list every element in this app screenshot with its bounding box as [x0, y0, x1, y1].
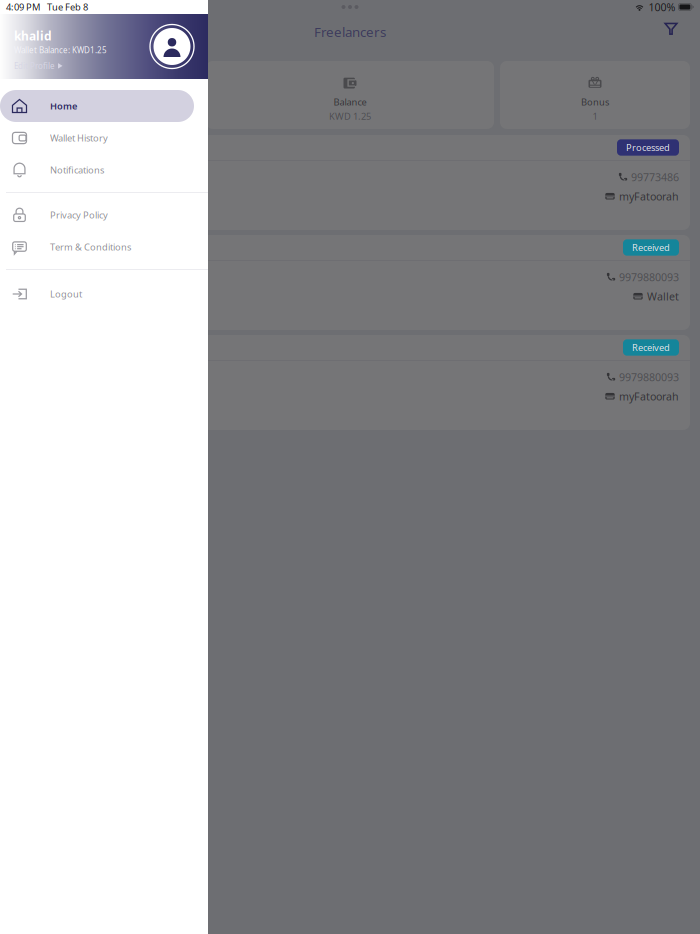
- staticText: Bonus: [581, 96, 609, 108]
- staticText: khalid: [14, 28, 52, 44]
- staticText: Wallet Balance: KWD1.25: [14, 45, 107, 55]
- staticText: Received: [632, 241, 670, 254]
- staticText: Balance: [333, 96, 366, 108]
- staticText: 9979880093: [619, 270, 679, 284]
- staticText: Freelancers: [314, 23, 386, 41]
- button[interactable]: Bonus: [500, 61, 690, 129]
- staticText: Processed: [626, 141, 670, 154]
- staticText: KWD 1.25: [329, 110, 371, 122]
- button[interactable]: Processed: [0, 135, 700, 230]
- staticText: myFatoorah: [619, 189, 679, 203]
- staticText: 9979880093: [619, 370, 679, 384]
- button[interactable]: Edit Profile: [14, 61, 62, 71]
- staticText: Wallet: [647, 289, 679, 303]
- staticText: myFatoorah: [619, 389, 679, 403]
- button[interactable]: Wallet History: [0, 122, 208, 154]
- staticText: Logout: [50, 288, 82, 300]
- staticText: Privacy Policy: [50, 209, 108, 221]
- button[interactable]: Received: [0, 335, 700, 430]
- button[interactable]: Received: [0, 235, 700, 330]
- staticText: Home: [50, 100, 77, 112]
- button[interactable]: Filter: [656, 13, 686, 43]
- button[interactable]: Privacy Policy: [0, 199, 208, 231]
- staticText: Tue Feb 8: [47, 1, 88, 13]
- staticText: Notifications: [50, 164, 104, 176]
- button[interactable]: Home: [0, 90, 208, 122]
- button[interactable]: Logout: [0, 278, 208, 310]
- staticText: Term & Conditions: [50, 241, 131, 253]
- staticText: 4:09 PM: [6, 1, 40, 13]
- staticText: 1: [592, 110, 597, 122]
- staticText: 99773486: [631, 170, 679, 184]
- button[interactable]: Term & Conditions: [0, 231, 208, 263]
- button[interactable]: Balance: [206, 61, 494, 129]
- staticText: 100%: [648, 0, 675, 14]
- staticText: Received: [632, 341, 670, 354]
- staticText: Wallet History: [50, 132, 108, 144]
- staticText: Edit Profile: [14, 61, 55, 71]
- button[interactable]: Wallet: [10, 61, 200, 129]
- button[interactable]: Notifications: [0, 154, 208, 186]
